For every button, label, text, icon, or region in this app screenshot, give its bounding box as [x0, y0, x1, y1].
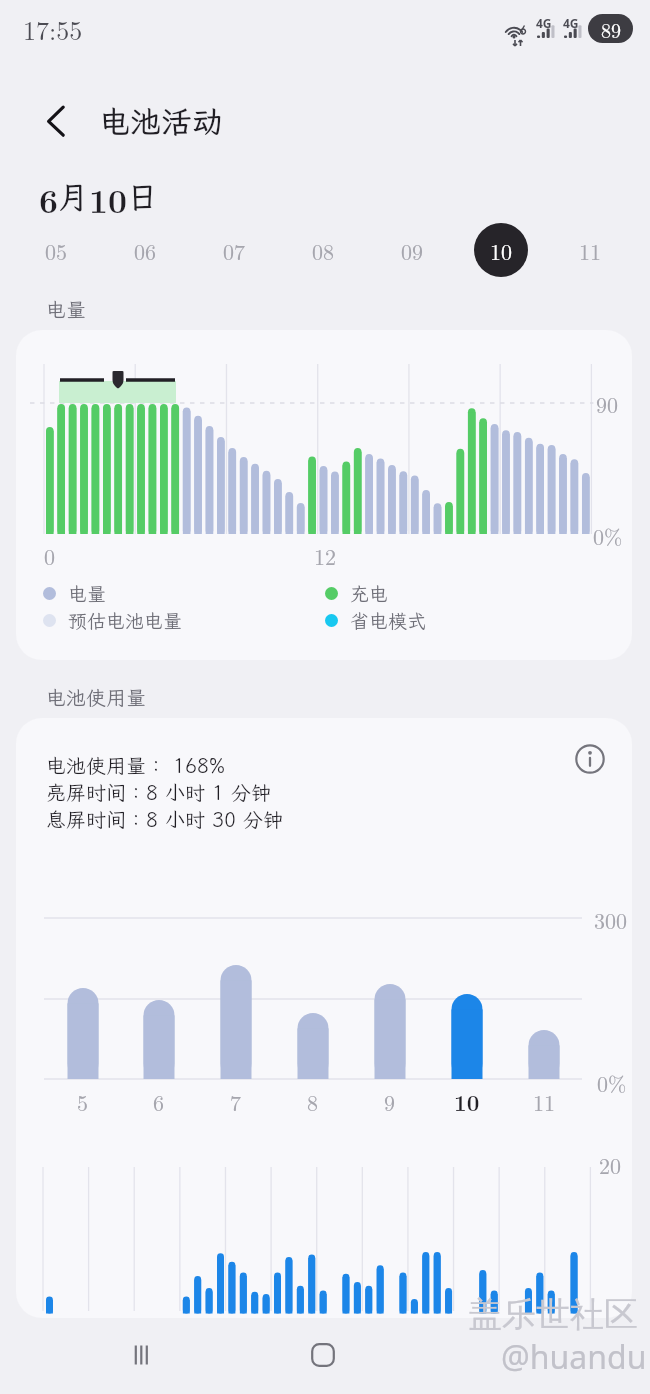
staticText: 20	[599, 1149, 622, 1180]
staticText: 省电模式	[350, 608, 427, 633]
button[interactable]: 06	[118, 223, 172, 277]
staticText: 0%	[597, 1067, 627, 1098]
staticText: 0%	[593, 520, 623, 551]
button[interactable]: 充电	[325, 577, 389, 609]
staticText: 4G	[536, 15, 552, 31]
staticText: 电池使用量： 168%	[46, 752, 225, 778]
button[interactable]: 07	[207, 223, 261, 277]
button[interactable]: 10	[474, 223, 528, 277]
staticText: 日	[127, 176, 158, 216]
staticText: 90	[596, 388, 619, 419]
staticText: 预估电池电量	[68, 608, 183, 633]
button[interactable]: 电量	[43, 577, 107, 609]
staticText: 06	[134, 235, 157, 266]
staticText: 0	[44, 540, 56, 571]
staticText: 5	[77, 1086, 89, 1117]
staticText: @huandu	[501, 1335, 647, 1379]
staticText: 电池使用量	[46, 684, 146, 710]
button[interactable]: 省电模式	[325, 604, 427, 636]
staticText: 月	[58, 176, 89, 216]
staticText: 08	[312, 235, 335, 266]
staticText: 电池活动	[99, 101, 223, 142]
staticText: 11	[579, 235, 602, 266]
staticText: 充电	[350, 581, 389, 606]
staticText: 盖乐世社区	[468, 1293, 638, 1336]
button[interactable]: Recent apps	[109, 1323, 173, 1387]
staticText: 6	[153, 1086, 165, 1117]
button[interactable]: Back	[473, 1323, 537, 1387]
staticText: 电量	[46, 296, 86, 322]
staticText: 09	[401, 235, 424, 266]
staticText: 11	[533, 1086, 556, 1117]
staticText: 6	[39, 176, 58, 216]
staticText: 息屏时间：8 小时 30 分钟	[46, 806, 283, 832]
staticText: 300	[594, 904, 628, 935]
staticText: 89	[601, 15, 621, 43]
staticText: 电量	[68, 581, 107, 606]
staticText: 10	[89, 176, 127, 216]
staticText: 07	[223, 235, 246, 266]
staticText: 7	[230, 1086, 242, 1117]
staticText: 9	[384, 1086, 396, 1117]
button[interactable]: 05	[29, 223, 83, 277]
staticText: 8	[307, 1086, 319, 1117]
staticText: 亮屏时间：8 小时 1 分钟	[46, 779, 271, 805]
staticText: 10	[490, 235, 513, 266]
staticText: 17:55	[23, 11, 83, 48]
staticText: 12	[314, 540, 337, 571]
button[interactable]: Home	[291, 1323, 355, 1387]
button[interactable]: Information	[566, 735, 614, 783]
button[interactable]: 预估电池电量	[43, 604, 183, 636]
button[interactable]: 11	[563, 223, 617, 277]
button[interactable]: 08	[296, 223, 350, 277]
button[interactable]: 09	[385, 223, 439, 277]
staticText: 05	[45, 235, 68, 266]
staticText: 4G	[563, 15, 579, 31]
staticText: 10	[454, 1086, 480, 1117]
button[interactable]: Back	[28, 97, 76, 145]
